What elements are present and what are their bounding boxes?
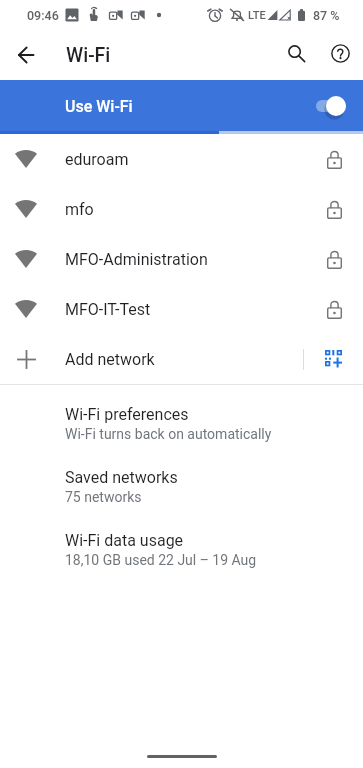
button[interactable]: Search: [276, 33, 316, 73]
button[interactable]: Help: [320, 33, 360, 73]
staticText: 09:46: [27, 8, 59, 23]
button[interactable]: Use Wi-Fi: [0, 80, 363, 134]
staticText: MFO-Administration: [65, 250, 208, 269]
staticText: 18,10 GB used 22 Jul – 19 Aug: [65, 552, 257, 568]
staticText: MFO-IT-Test: [65, 300, 151, 319]
button[interactable]: Add network: [0, 334, 363, 384]
other: Secured network: [321, 296, 347, 322]
staticText: Wi-Fi data usage: [65, 531, 184, 550]
button[interactable]: mfo: [0, 184, 363, 234]
staticText: 87 %: [313, 8, 340, 23]
staticText: Wi-Fi: [66, 44, 111, 67]
other: Secured network: [321, 246, 347, 272]
staticText: Saved networks: [65, 468, 178, 487]
button[interactable]: eduroam: [0, 134, 363, 184]
staticText: Add network: [65, 350, 155, 369]
staticText: LTE: [248, 9, 266, 22]
button[interactable]: Wi-Fi preferences: [0, 392, 363, 455]
button[interactable]: MFO-Administration: [0, 234, 363, 284]
button[interactable]: Saved networks: [0, 455, 363, 518]
staticText: Use Wi-Fi: [65, 97, 133, 116]
button[interactable]: Scan QR code to add network: [319, 345, 347, 373]
staticText: mfo: [65, 200, 94, 219]
button[interactable]: Back: [7, 36, 45, 74]
staticText: Wi-Fi turns back on automatically: [65, 426, 272, 442]
other: Secured network: [321, 146, 347, 172]
button[interactable]: MFO-IT-Test: [0, 284, 363, 334]
staticText: 75 networks: [65, 489, 142, 505]
staticText: eduroam: [65, 150, 129, 169]
other: Secured network: [321, 196, 347, 222]
button[interactable]: Wi-Fi data usage: [0, 518, 363, 581]
staticText: Wi-Fi preferences: [65, 405, 189, 424]
